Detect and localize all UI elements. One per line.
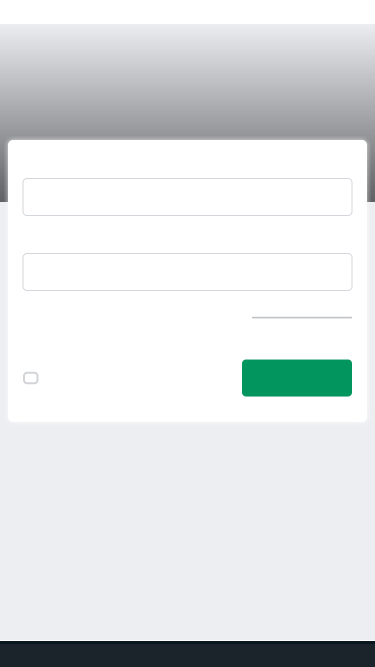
button[interactable]: Username bbox=[23, 178, 352, 215]
button[interactable]: Remember me bbox=[23, 373, 37, 383]
button[interactable]: Sign in bbox=[242, 359, 352, 396]
